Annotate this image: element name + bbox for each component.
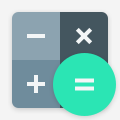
button[interactable]: Subtract — [12, 12, 60, 60]
button[interactable]: Equals — [53, 53, 116, 116]
button[interactable]: Add — [12, 60, 60, 108]
button[interactable]: Multiply — [60, 12, 108, 60]
button[interactable]: Equals — [60, 60, 108, 108]
